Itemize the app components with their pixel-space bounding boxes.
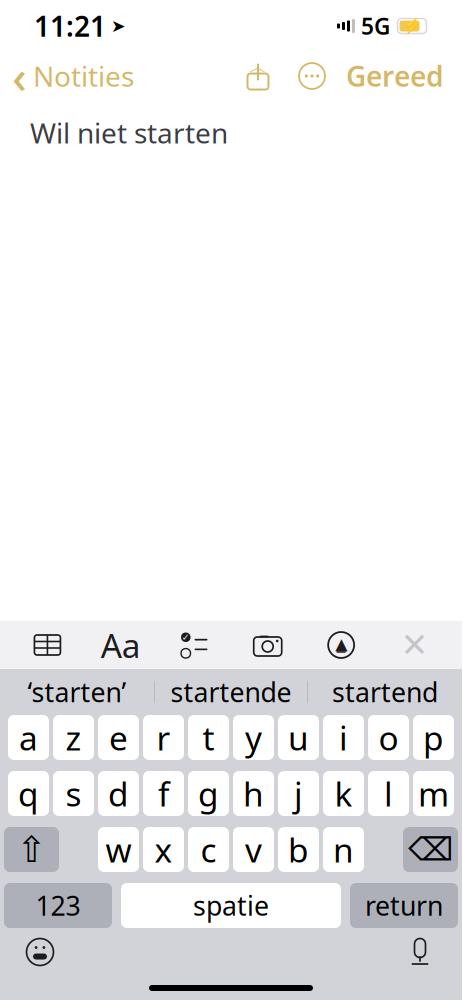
staticText: ⌫: [408, 831, 453, 868]
button[interactable]: g: [188, 771, 229, 816]
staticText: d: [108, 771, 129, 816]
staticText: ▲: [335, 635, 347, 653]
staticText: 123: [35, 888, 80, 923]
button[interactable]: q: [8, 771, 49, 816]
button[interactable]: s: [53, 771, 94, 816]
staticText: Notities: [33, 57, 134, 95]
staticText: ‹: [12, 46, 27, 106]
button[interactable]: Checklist: [168, 623, 220, 667]
button[interactable]: Verwijder: [403, 827, 458, 872]
button[interactable]: Deel: [236, 54, 280, 98]
staticText: i: [339, 715, 348, 760]
button[interactable]: Dicteren: [396, 930, 444, 974]
button[interactable]: z: [53, 715, 94, 760]
button[interactable]: e: [98, 715, 139, 760]
button[interactable]: r: [143, 715, 184, 760]
button[interactable]: c: [188, 827, 229, 872]
staticText: c: [200, 827, 216, 872]
button[interactable]: k: [323, 771, 364, 816]
button[interactable]: m: [413, 771, 454, 816]
staticText: ✕: [401, 626, 429, 664]
staticText: u: [288, 715, 309, 760]
staticText: z: [65, 715, 81, 760]
button[interactable]: a: [8, 715, 49, 760]
button[interactable]: startende: [155, 670, 307, 714]
staticText: k: [334, 771, 352, 816]
button[interactable]: p: [413, 715, 454, 760]
button[interactable]: i: [323, 715, 364, 760]
staticText: ⚡: [403, 18, 421, 34]
staticText: e: [109, 715, 128, 760]
button[interactable]: Opmaak: [95, 623, 147, 667]
button[interactable]: Camera: [242, 623, 294, 667]
staticText: y: [245, 715, 262, 760]
staticText: b: [288, 827, 309, 872]
staticText: Gereed: [346, 57, 444, 95]
staticText: ︿: [249, 56, 266, 78]
staticText: Wil niet starten: [30, 114, 228, 151]
staticText: s: [65, 771, 81, 816]
button[interactable]: j: [278, 771, 319, 816]
staticText: j: [294, 771, 303, 816]
button[interactable]: y: [233, 715, 274, 760]
staticText: p: [423, 715, 444, 760]
button[interactable]: d: [98, 771, 139, 816]
button[interactable]: f: [143, 771, 184, 816]
staticText: t: [202, 715, 214, 760]
staticText: r: [156, 715, 170, 760]
button[interactable]: ‹: [0, 54, 142, 98]
button[interactable]: Shift: [4, 827, 59, 872]
button[interactable]: return: [350, 883, 458, 928]
staticText: ✓: [182, 632, 190, 643]
button[interactable]: ‘starten’: [0, 670, 154, 714]
button[interactable]: o: [368, 715, 409, 760]
button[interactable]: Gereed: [334, 54, 456, 98]
staticText: ‘starten’: [27, 674, 126, 710]
staticText: o: [378, 715, 398, 760]
button[interactable]: x: [143, 827, 184, 872]
staticText: g: [198, 771, 219, 816]
staticText: w: [105, 827, 131, 872]
staticText: startende: [170, 674, 291, 710]
button[interactable]: 123: [4, 883, 112, 928]
staticText: a: [19, 715, 38, 760]
button[interactable]: b: [278, 827, 319, 872]
staticText: Aa: [101, 623, 141, 667]
button[interactable]: l: [368, 771, 409, 816]
staticText: return: [365, 888, 443, 923]
staticText: ⇧: [16, 829, 46, 870]
button[interactable]: Tabel: [21, 623, 73, 667]
button[interactable]: Meer: [290, 54, 334, 98]
button[interactable]: startend: [308, 670, 462, 714]
staticText: 11:21: [34, 7, 106, 45]
button[interactable]: u: [278, 715, 319, 760]
button[interactable]: w: [98, 827, 139, 872]
staticText: spatie: [193, 888, 269, 923]
button[interactable]: Markeringen: [315, 623, 367, 667]
staticText: startend: [332, 674, 438, 710]
staticText: ➤: [111, 16, 126, 36]
staticText: m: [418, 771, 449, 816]
staticText: q: [18, 771, 39, 816]
staticText: x: [154, 827, 172, 872]
staticText: h: [243, 771, 264, 816]
button[interactable]: h: [233, 771, 274, 816]
staticText: v: [245, 827, 262, 872]
staticText: l: [384, 771, 393, 816]
staticText: f: [158, 771, 169, 816]
staticText: 5G: [361, 11, 390, 41]
button[interactable]: n: [323, 827, 364, 872]
button[interactable]: v: [233, 827, 274, 872]
button[interactable]: t: [188, 715, 229, 760]
staticText: n: [333, 827, 354, 872]
button[interactable]: Emoji: [16, 930, 64, 974]
button[interactable]: spatie: [121, 883, 341, 928]
button[interactable]: Sluit toetsenbord: [389, 623, 441, 667]
